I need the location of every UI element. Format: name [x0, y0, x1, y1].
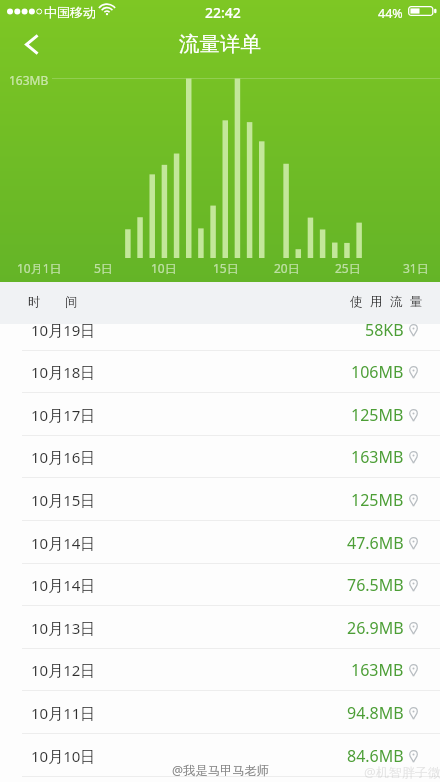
staticText: 10月13日: [31, 618, 96, 638]
staticText: 10月14日: [31, 575, 96, 595]
staticText: 10日: [151, 260, 177, 276]
staticText: 26.9MB: [347, 617, 404, 639]
staticText: 163MB: [351, 446, 404, 468]
button[interactable]: 10月19日: [0, 308, 440, 351]
button[interactable]: 10月10日: [0, 734, 440, 777]
staticText: @机智胖子微: [364, 763, 440, 781]
button[interactable]: 10月11日: [0, 691, 440, 734]
button[interactable]: 10月14日: [0, 521, 440, 564]
staticText: 44%: [378, 5, 403, 22]
staticText: @我是马甲马老师: [172, 762, 270, 779]
staticText: 47.6MB: [347, 532, 404, 554]
staticText: 10月17日: [31, 405, 96, 425]
staticText: 106MB: [351, 361, 404, 383]
button[interactable]: 10月15日: [0, 478, 440, 521]
button[interactable]: 10月18日: [0, 350, 440, 393]
button[interactable]: 10月16日: [0, 435, 440, 478]
staticText: 10月11日: [31, 703, 96, 723]
staticText: 5日: [94, 260, 113, 276]
button[interactable]: 10月13日: [0, 606, 440, 649]
staticText: 94.8MB: [347, 702, 404, 724]
staticText: 10月12日: [31, 660, 96, 680]
staticText: 10月19日: [31, 320, 96, 340]
staticText: 10月15日: [31, 490, 96, 510]
staticText: 22:42: [205, 3, 241, 22]
staticText: 10月16日: [31, 447, 96, 467]
staticText: 58KB: [365, 319, 404, 341]
staticText: 76.5MB: [347, 574, 404, 596]
staticText: 10月14日: [31, 533, 96, 553]
staticText: 125MB: [351, 404, 404, 426]
staticText: 10月10日: [31, 746, 96, 766]
staticText: 流: [390, 294, 403, 310]
staticText: 间: [65, 294, 78, 310]
staticText: 20日: [274, 260, 300, 276]
staticText: 31日: [403, 260, 429, 276]
button[interactable]: 10月12日: [0, 648, 440, 691]
button[interactable]: 10月17日: [0, 393, 440, 436]
button[interactable]: 10月14日: [0, 563, 440, 606]
staticText: 10月18日: [31, 362, 96, 382]
staticText: 中国移动: [44, 4, 96, 20]
button[interactable]: 时: [0, 282, 440, 324]
button[interactable]: Back: [10, 22, 54, 66]
staticText: 用: [370, 294, 383, 310]
staticText: 163MB: [9, 72, 49, 88]
staticText: 15日: [213, 260, 239, 276]
staticText: 流量详单: [179, 31, 261, 57]
staticText: 25日: [335, 260, 361, 276]
staticText: 163MB: [351, 659, 404, 681]
staticText: 时: [28, 294, 41, 310]
staticText: 量: [410, 294, 423, 310]
staticText: 使: [350, 294, 363, 310]
staticText: 84.6MB: [347, 745, 404, 767]
staticText: 10月1日: [17, 260, 62, 276]
staticText: 125MB: [351, 489, 404, 511]
